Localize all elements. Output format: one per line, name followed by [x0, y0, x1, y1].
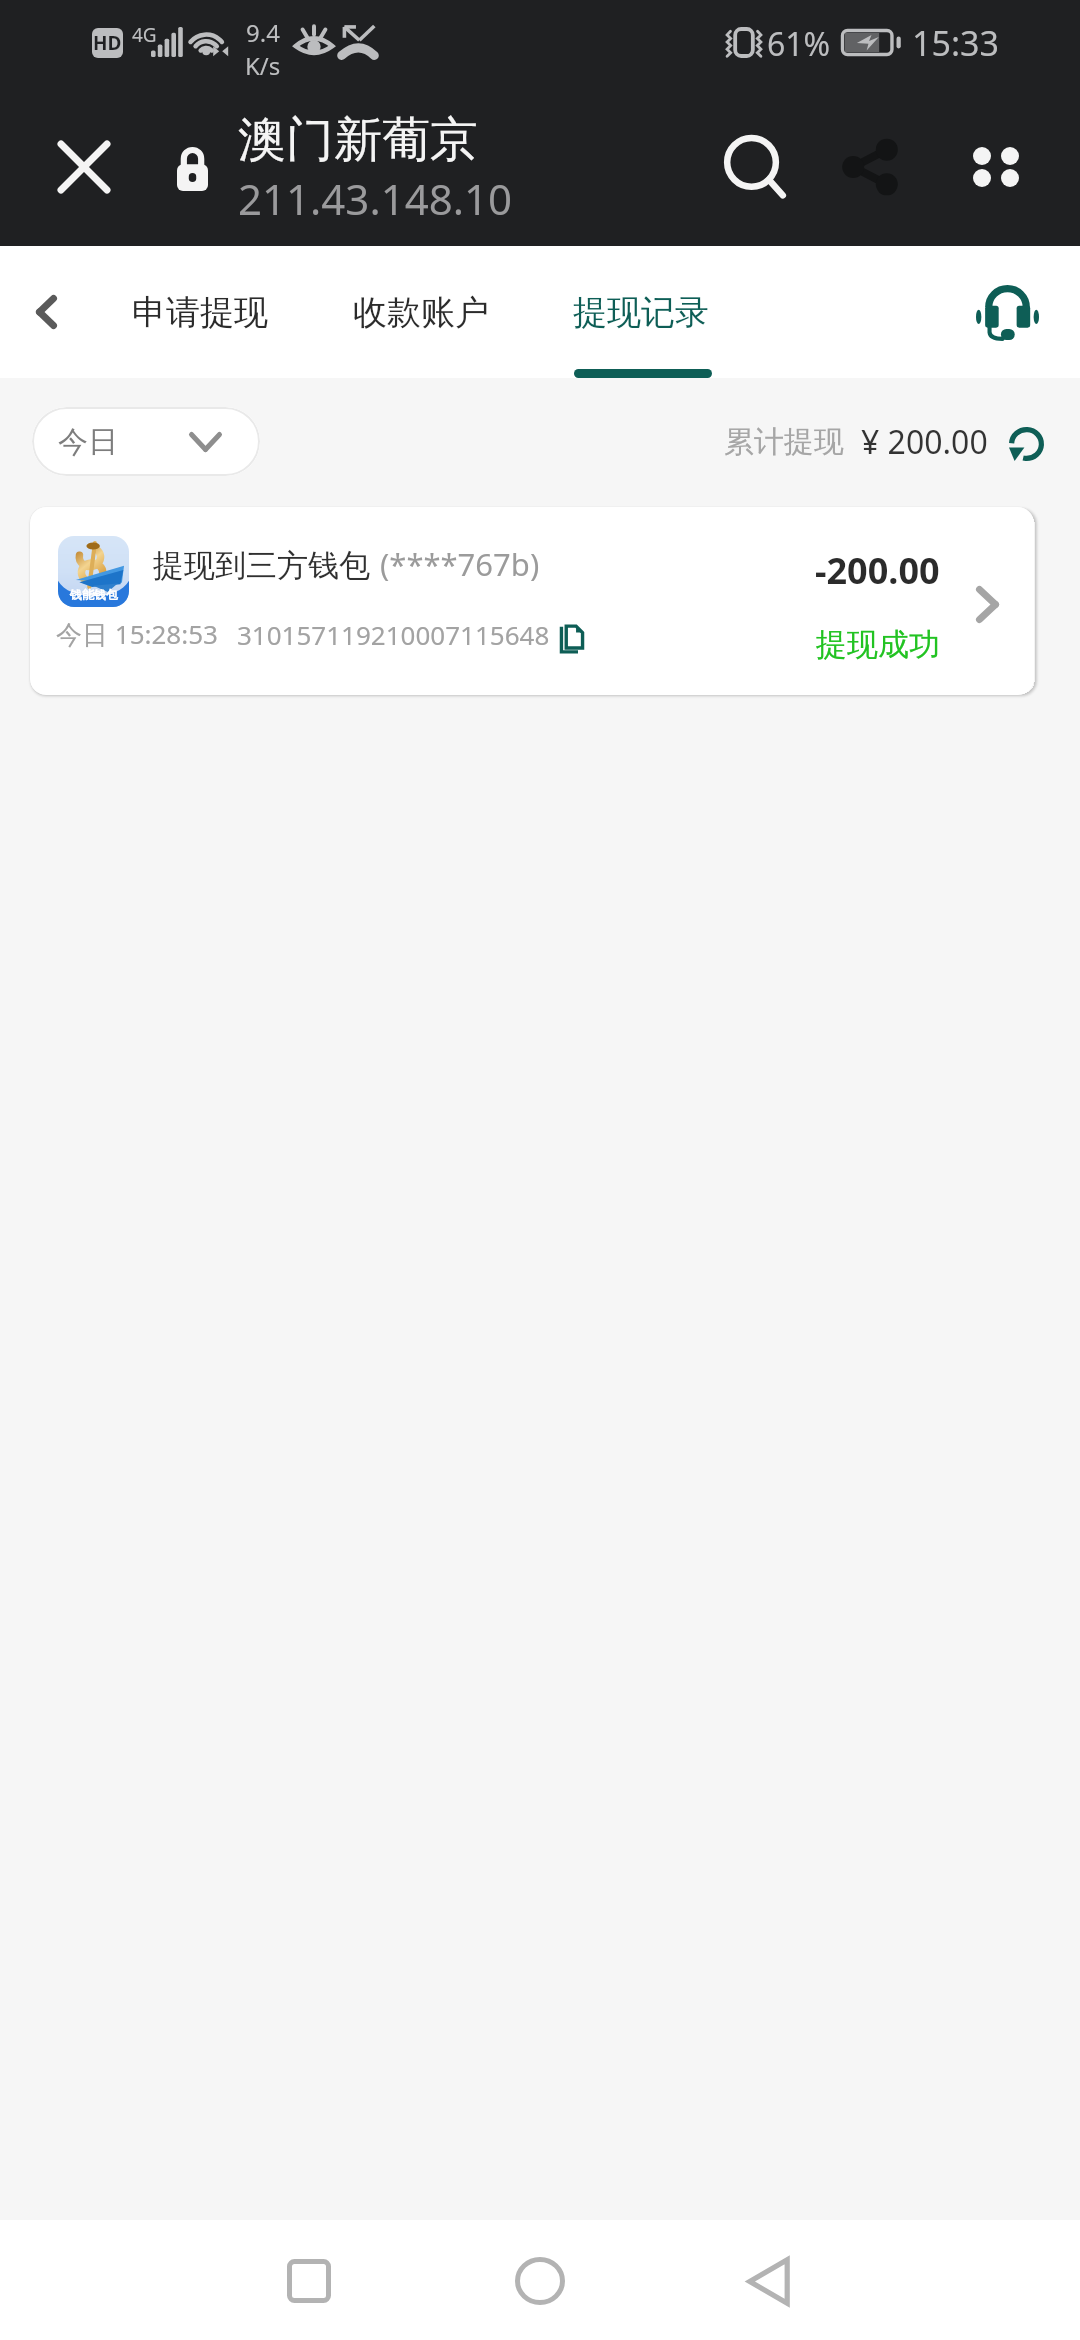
staticText: 211.43.148.10	[238, 170, 513, 227]
button[interactable]: Home	[485, 2226, 595, 2336]
button[interactable]: 提现记录	[551, 246, 731, 378]
button[interactable]: Customer service	[959, 264, 1055, 360]
button[interactable]: 今日	[32, 407, 260, 476]
staticText: 澳门新葡京	[238, 110, 478, 170]
button[interactable]: Back	[2, 268, 90, 356]
button[interactable]: Copy	[552, 619, 592, 659]
staticText: 今日 15:28:53	[56, 616, 218, 652]
button[interactable]: Refresh	[998, 416, 1054, 472]
button[interactable]: Back	[713, 2226, 823, 2336]
button[interactable]: Close	[38, 121, 130, 213]
staticText: 钱能钱包	[70, 587, 118, 602]
button[interactable]: Search	[699, 111, 811, 223]
staticText: 提现记录	[573, 291, 709, 334]
staticText: 9.4	[246, 16, 280, 49]
staticText: (****767b)	[380, 543, 540, 585]
staticText: 累计提现	[724, 423, 844, 461]
staticText: 310157119210007115648	[237, 617, 550, 652]
staticText: 提现到三方钱包	[153, 546, 370, 585]
button[interactable]: Site security info	[157, 135, 227, 205]
staticText: 61%	[767, 22, 831, 66]
button[interactable]: Recents	[254, 2226, 364, 2336]
staticText: 今日	[58, 423, 118, 461]
button[interactable]: 申请提现	[110, 246, 290, 378]
button[interactable]: More options	[940, 111, 1052, 223]
staticText: 15:33	[912, 20, 999, 66]
staticText: 4G	[132, 22, 157, 48]
staticText: ¥ 200.00	[861, 420, 988, 464]
staticText: K/s	[245, 49, 281, 82]
staticText: 申请提现	[132, 291, 268, 334]
button[interactable]: Share	[814, 111, 926, 223]
button[interactable]: 收款账户	[331, 246, 511, 378]
staticText: -200.00	[815, 546, 940, 595]
staticText: 收款账户	[353, 291, 489, 334]
button[interactable]: 钱能钱包	[30, 507, 1034, 695]
staticText: 提现成功	[816, 625, 940, 664]
staticText: HD	[93, 30, 122, 56]
